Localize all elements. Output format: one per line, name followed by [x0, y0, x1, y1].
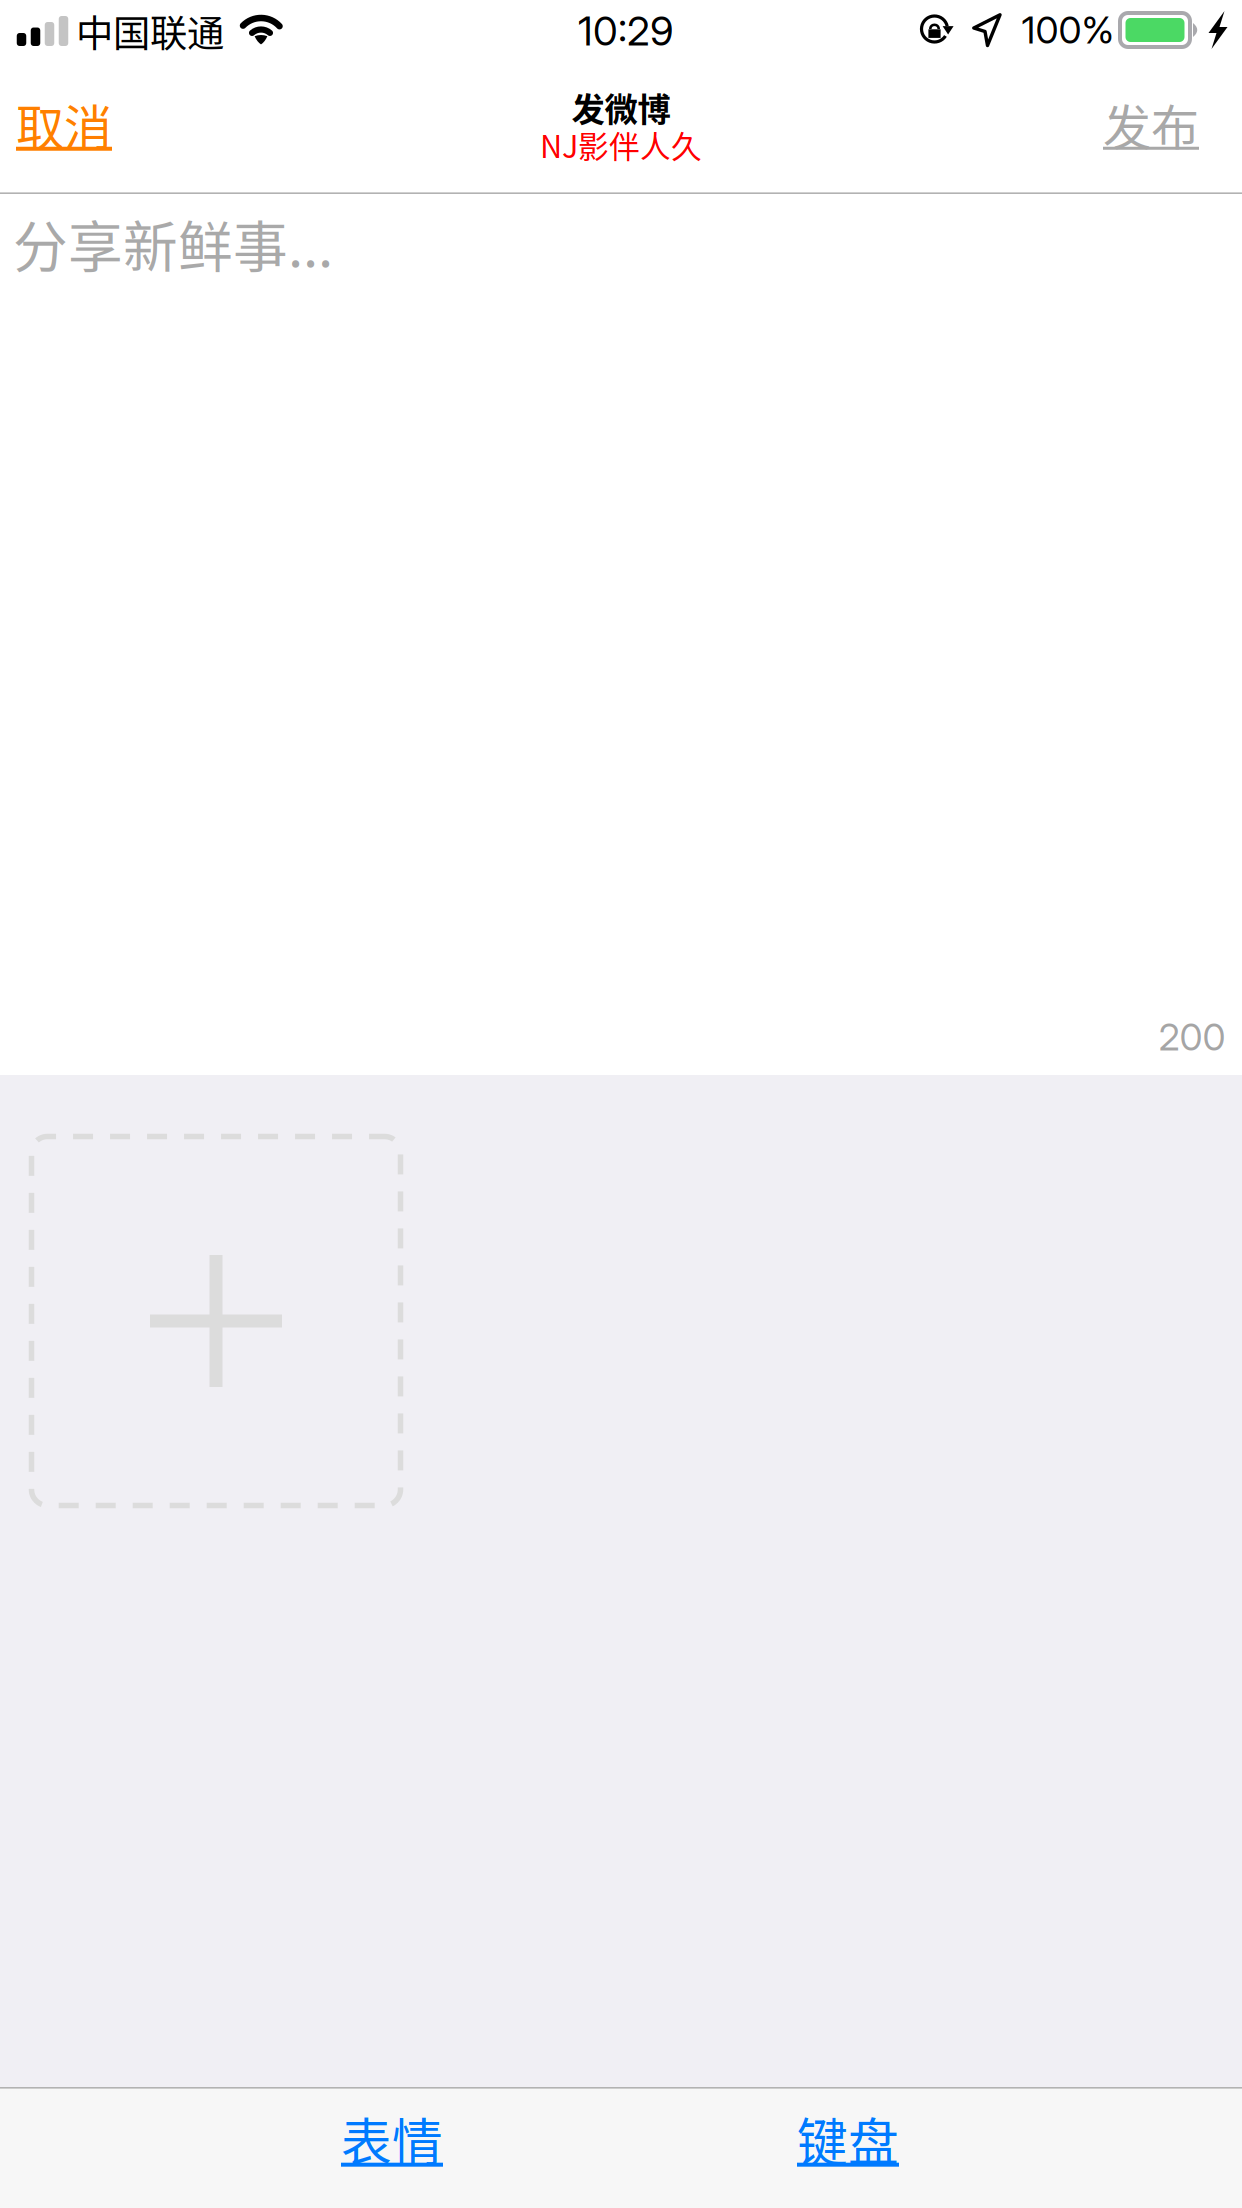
button[interactable]: Add photo: [31, 1136, 400, 1505]
staticText: 200: [1158, 1014, 1225, 1060]
button[interactable]: 取消: [0, 75, 131, 173]
staticText: 发布: [1103, 89, 1199, 159]
button[interactable]: 键盘: [771, 2084, 925, 2194]
staticText: 中国联通: [76, 4, 224, 58]
staticText: 键盘: [797, 2102, 899, 2176]
staticText: 表情: [341, 2102, 443, 2176]
staticText: 10:29: [578, 7, 674, 55]
staticText: 发微博: [571, 83, 670, 131]
staticText: 100%: [1021, 7, 1114, 53]
staticText: NJ影伴人久: [540, 122, 702, 167]
button[interactable]: 发布: [1082, 75, 1220, 173]
staticText: 取消: [16, 89, 112, 159]
staticText: 分享新鲜事...: [13, 203, 333, 283]
button[interactable]: 表情: [315, 2084, 469, 2194]
